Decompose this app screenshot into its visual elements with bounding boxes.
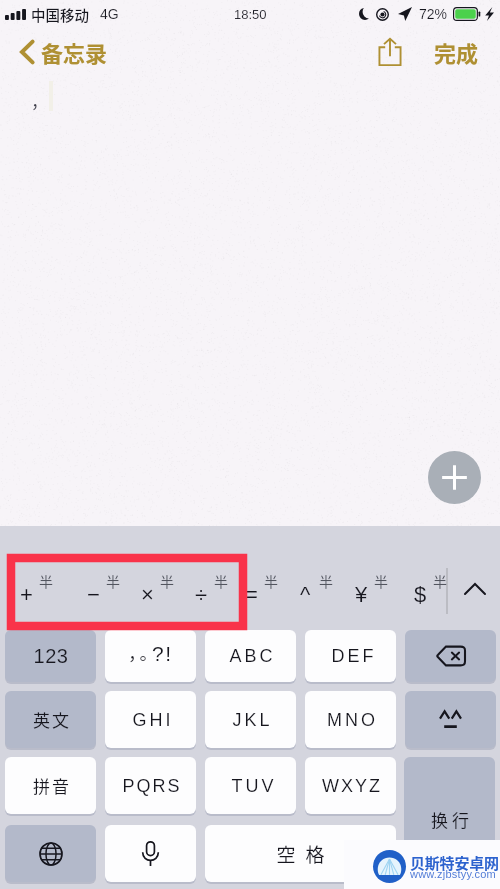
staticText: 半 (374, 571, 388, 591)
button[interactable]: 空格 (205, 825, 396, 882)
staticText: ?! (152, 642, 173, 665)
staticText: − (87, 582, 100, 607)
button[interactable]: JKL (205, 691, 296, 748)
staticText: TUV (230, 776, 275, 796)
button[interactable]: ¥ (337, 556, 387, 626)
button[interactable]: ^ (282, 556, 332, 626)
staticText: 半 (264, 571, 278, 591)
staticText: JKL (232, 710, 273, 730)
staticText: 半 (106, 571, 120, 591)
staticText: WXYZ (322, 776, 382, 796)
staticText: 72% (419, 6, 448, 22)
staticText: 中国移动 (31, 4, 89, 25)
button[interactable]: 换行 (404, 757, 495, 883)
staticText: + (20, 582, 33, 607)
button[interactable]: Share (373, 35, 407, 69)
button[interactable]: Switch keyboard (5, 825, 96, 882)
button[interactable]: 拼音 (5, 757, 96, 814)
staticText: 半 (319, 571, 333, 591)
button[interactable]: Voice input (105, 825, 196, 882)
staticText: GHI (132, 710, 174, 730)
button[interactable]: TUV (205, 757, 296, 814)
button[interactable]: WXYZ (305, 757, 396, 814)
staticText: 半 (39, 571, 53, 591)
staticText: MNO (327, 710, 378, 730)
button[interactable]: PQRS (105, 757, 196, 814)
button[interactable]: − (69, 556, 119, 626)
staticText: 半 (160, 571, 174, 591)
staticText: 英文 (33, 707, 71, 732)
staticText: ÷ (195, 582, 208, 607)
staticText: ， (31, 88, 48, 113)
staticText: 半 (433, 571, 447, 591)
button[interactable]: × (123, 556, 173, 626)
staticText: PQRS (122, 776, 182, 796)
staticText: 换行 (431, 807, 473, 832)
staticText: ¥ (355, 582, 368, 607)
staticText: www.zjbstyy.com (410, 868, 496, 880)
staticText: DEF (330, 646, 375, 666)
button[interactable]: Punctuation (105, 630, 196, 682)
button[interactable]: Hide keyboard (452, 554, 498, 624)
staticText: 半 (214, 571, 228, 591)
button[interactable]: Emoji (405, 691, 496, 748)
staticText: ^ (300, 582, 311, 607)
staticText: × (141, 582, 154, 607)
button[interactable]: ABC (205, 630, 296, 682)
button[interactable]: DEF (305, 630, 396, 682)
staticText: = (245, 582, 258, 607)
button[interactable]: Backspace (405, 630, 496, 682)
staticText: 18:50 (234, 7, 267, 22)
staticText: ，。 (128, 639, 151, 665)
button[interactable]: Add note attachment (428, 451, 481, 504)
staticText: 空格 (276, 840, 335, 868)
staticText: 4G (100, 6, 119, 22)
staticText: 备忘录 (41, 36, 108, 68)
button[interactable]: 备忘录 (20, 36, 108, 68)
button[interactable]: + (2, 556, 52, 626)
staticText: 123 (33, 645, 69, 667)
button[interactable]: GHI (105, 691, 196, 748)
button[interactable]: MNO (305, 691, 396, 748)
staticText: $ (414, 582, 427, 607)
button[interactable]: 英文 (5, 691, 96, 748)
button[interactable]: $ (396, 556, 446, 626)
button[interactable]: ÷ (177, 556, 227, 626)
staticText: 拼音 (33, 773, 71, 798)
button[interactable]: 完成 (432, 32, 481, 72)
button[interactable]: 123 (5, 630, 96, 682)
staticText: 贝斯特安卓网 (410, 852, 499, 874)
button[interactable]: = (227, 556, 277, 626)
staticText: 完成 (434, 36, 479, 68)
staticText: ABC (229, 646, 276, 666)
